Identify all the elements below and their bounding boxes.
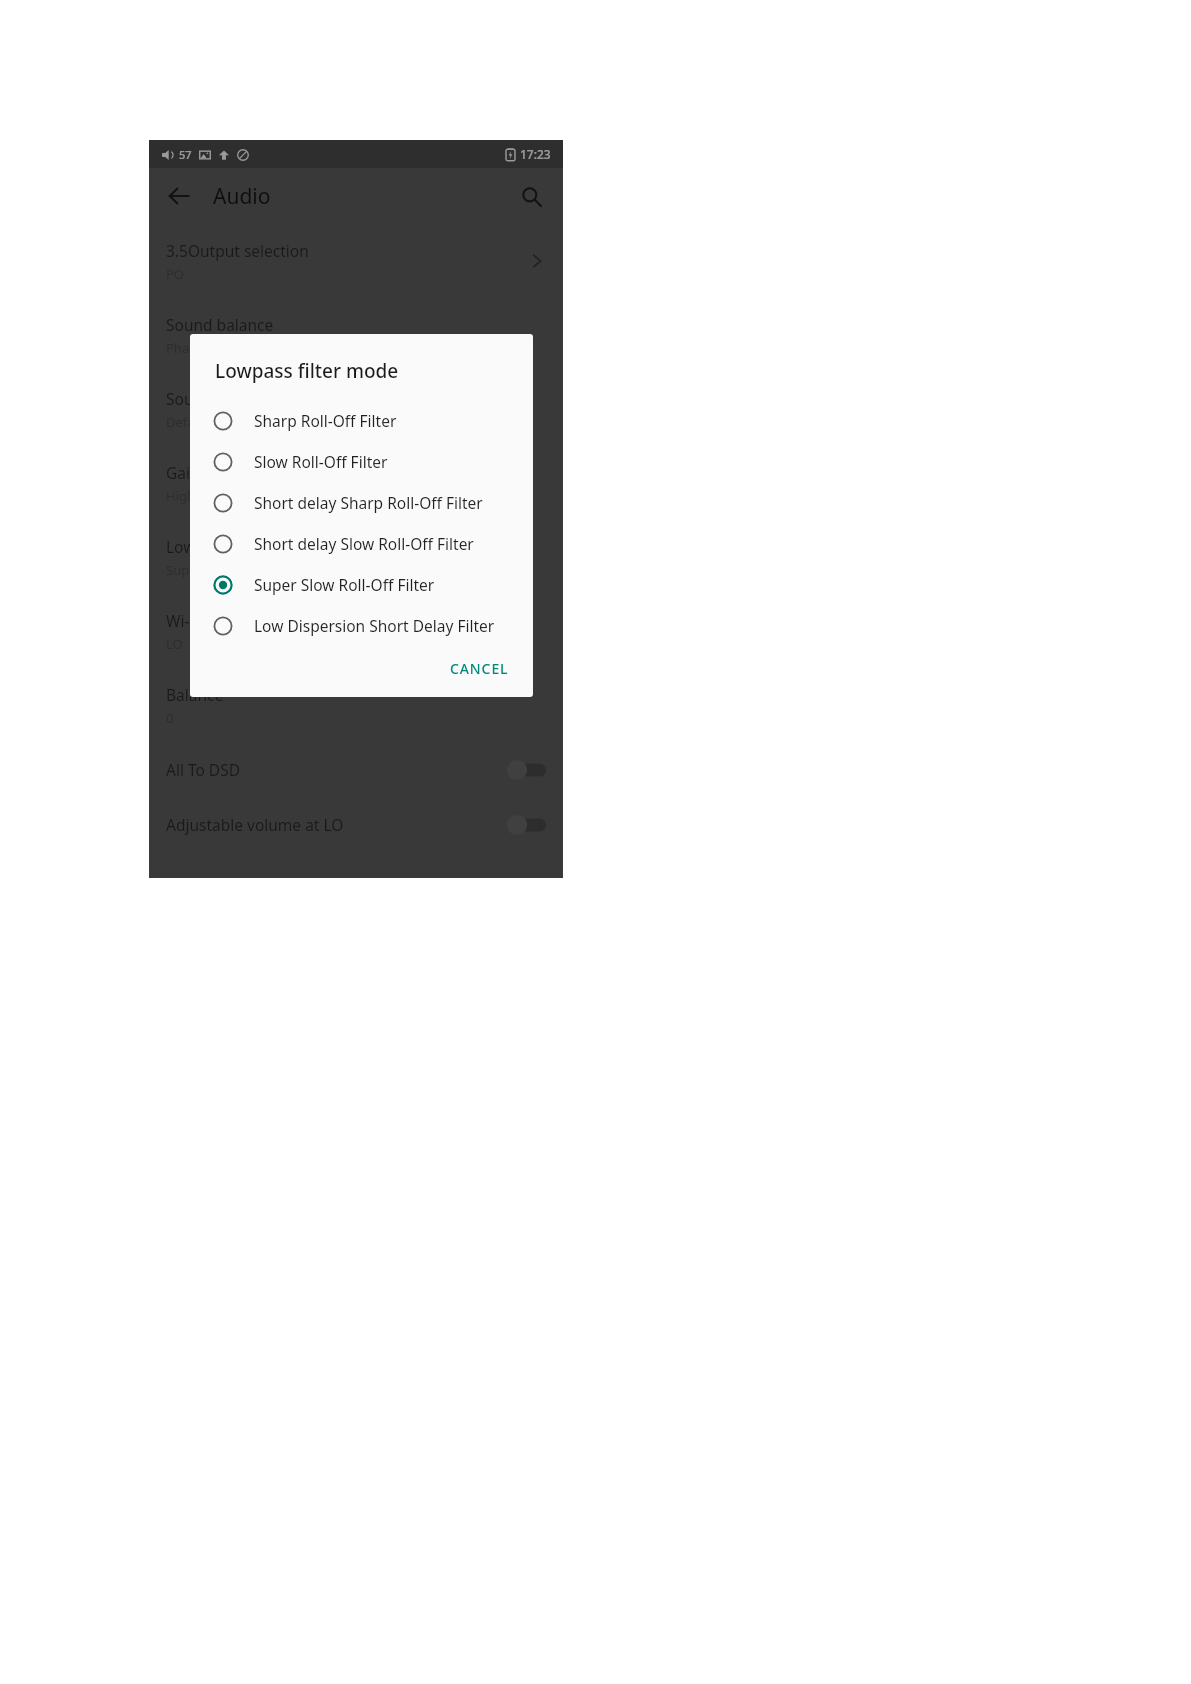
staticText: All To DSD xyxy=(166,759,241,780)
staticText: Default xyxy=(166,413,211,431)
staticText: 3.5Output selection xyxy=(166,240,309,261)
staticText: Sharp Roll-Off Filter xyxy=(254,410,397,431)
staticText: Wi-Fi digital output xyxy=(166,610,305,631)
button[interactable]: Lowpass filter mode xyxy=(149,520,563,594)
staticText: Slow Roll-Off Filter xyxy=(254,451,388,472)
button[interactable]: Sound balance xyxy=(149,298,563,372)
button[interactable]: Toggle All To DSD xyxy=(506,759,546,781)
staticText: PO xyxy=(166,265,185,283)
button[interactable]: Balance xyxy=(149,668,563,742)
button[interactable]: Short delay Slow Roll-Off Filter xyxy=(190,523,533,564)
staticText: CANCEL xyxy=(450,659,509,678)
staticText: LO xyxy=(166,635,183,653)
staticText: High xyxy=(166,487,196,505)
button[interactable]: Short delay Sharp Roll-Off Filter xyxy=(190,482,533,523)
staticText: Adjustable volume at LO xyxy=(166,814,344,835)
button[interactable]: 3.5Output selection xyxy=(149,224,563,298)
staticText: Sound balance xyxy=(166,314,274,335)
button[interactable]: Sharp Roll-Off Filter xyxy=(190,400,533,441)
staticText: 17:23 xyxy=(520,146,551,162)
staticText: 57 xyxy=(179,147,192,162)
staticText: Audio xyxy=(213,182,271,211)
staticText: Super Slow Roll-Off Filter xyxy=(254,574,435,595)
button[interactable]: CANCEL xyxy=(440,650,519,687)
staticText: Short delay Slow Roll-Off Filter xyxy=(254,533,474,554)
button[interactable]: Super Slow Roll-Off Filter xyxy=(190,564,533,605)
staticText: Phase shift xyxy=(166,339,233,357)
staticText: Lowpass filter mode xyxy=(215,358,399,384)
button[interactable]: Back xyxy=(157,174,201,218)
staticText: Sound field xyxy=(166,388,249,409)
button[interactable]: Wi-Fi digital output xyxy=(149,594,563,668)
staticText: 0 xyxy=(166,709,174,727)
button[interactable]: Toggle Adjustable volume at LO xyxy=(506,814,546,836)
button[interactable]: Gain xyxy=(149,446,563,520)
button[interactable]: Search xyxy=(509,174,553,218)
staticText: Balance xyxy=(166,684,224,705)
button[interactable]: Adjustable volume at LO xyxy=(149,797,563,852)
staticText: Lowpass filter mode xyxy=(166,536,313,557)
button[interactable]: Low Dispersion Short Delay Filter xyxy=(190,605,533,646)
button[interactable]: Slow Roll-Off Filter xyxy=(190,441,533,482)
staticText: Gain xyxy=(166,462,200,483)
staticText: Super Slow Roll-Off Filter xyxy=(166,561,318,579)
staticText: Low Dispersion Short Delay Filter xyxy=(254,615,495,636)
staticText: Short delay Sharp Roll-Off Filter xyxy=(254,492,483,513)
button[interactable]: Sound field xyxy=(149,372,563,446)
